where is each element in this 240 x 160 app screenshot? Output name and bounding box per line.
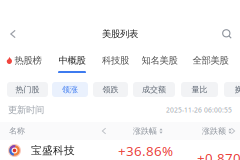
- staticText: 科技股: [102, 55, 129, 66]
- staticText: 更新时间: [8, 104, 44, 116]
- button[interactable]: 中概股: [48, 44, 96, 73]
- staticText: +36.86%: [118, 142, 173, 160]
- staticText: 涨跌幅: [133, 126, 157, 136]
- button[interactable]: 涨跌额: [202, 125, 231, 137]
- staticText: 中概股: [58, 55, 85, 66]
- button[interactable]: 领跌: [93, 82, 128, 97]
- staticText: 热门股: [15, 85, 39, 94]
- button[interactable]: 成交额: [133, 82, 175, 97]
- button[interactable]: 领涨: [52, 82, 88, 97]
- staticText: +0.870: [197, 149, 240, 160]
- staticText: 2025-11-26 06:00:55: [166, 106, 232, 114]
- staticText: 量比: [191, 85, 207, 94]
- button[interactable]: 全部美股: [184, 44, 237, 73]
- staticText: 美股列表: [102, 28, 138, 40]
- staticText: 领涨: [62, 85, 78, 94]
- button[interactable]: Back: [0, 27, 26, 41]
- staticText: 宝盛科技: [31, 144, 75, 157]
- button[interactable]: 涨跌幅: [133, 125, 162, 137]
- button[interactable]: 热门股: [7, 82, 48, 97]
- button[interactable]: 宝盛科技: [0, 140, 240, 160]
- button[interactable]: 科技股: [96, 44, 135, 73]
- staticText: 涨跌额: [202, 126, 226, 136]
- staticText: 全部美股: [192, 55, 228, 66]
- staticText: 热股榜: [14, 55, 41, 66]
- staticText: 成交额: [142, 85, 166, 94]
- staticText: 名称: [9, 126, 25, 136]
- staticText: 领跌: [102, 85, 118, 94]
- button[interactable]: Previous columns: [97, 124, 111, 138]
- button[interactable]: 热股榜: [0, 44, 48, 73]
- staticText: 知名美股: [141, 55, 177, 66]
- button[interactable]: Search: [214, 27, 240, 41]
- button[interactable]: More columns: [228, 124, 238, 138]
- staticText: 换手: [234, 85, 240, 94]
- button[interactable]: 量比: [181, 82, 218, 97]
- button[interactable]: 换手: [224, 82, 240, 97]
- button[interactable]: 知名美股: [135, 44, 184, 73]
